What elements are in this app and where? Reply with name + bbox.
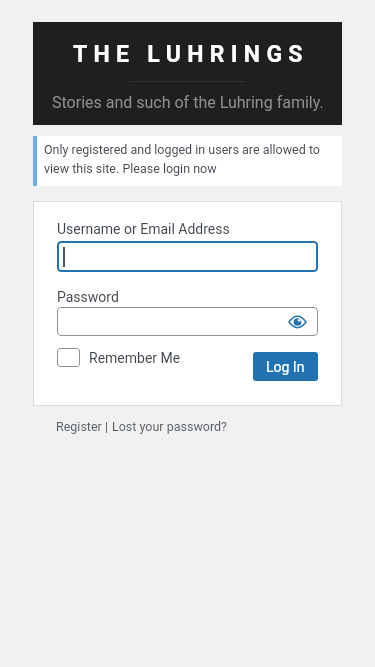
staticText: Stories and such of the Luhring family. [52, 93, 324, 112]
button[interactable]: Remember Me [57, 348, 181, 367]
button[interactable]: Lost your password? [112, 419, 228, 434]
staticText: Username or Email Address [57, 221, 230, 237]
button[interactable]: Log In [253, 352, 318, 381]
staticText: | [102, 419, 112, 434]
staticText: Only registered and logged in users are … [44, 142, 320, 176]
button[interactable]: Register [56, 419, 102, 434]
button[interactable] [57, 307, 318, 336]
staticText: THE LUHRINGS [73, 41, 309, 68]
button[interactable] [57, 241, 318, 272]
staticText: Password [57, 289, 119, 305]
staticText: Log In [266, 359, 305, 375]
staticText: Remember Me [89, 350, 181, 366]
